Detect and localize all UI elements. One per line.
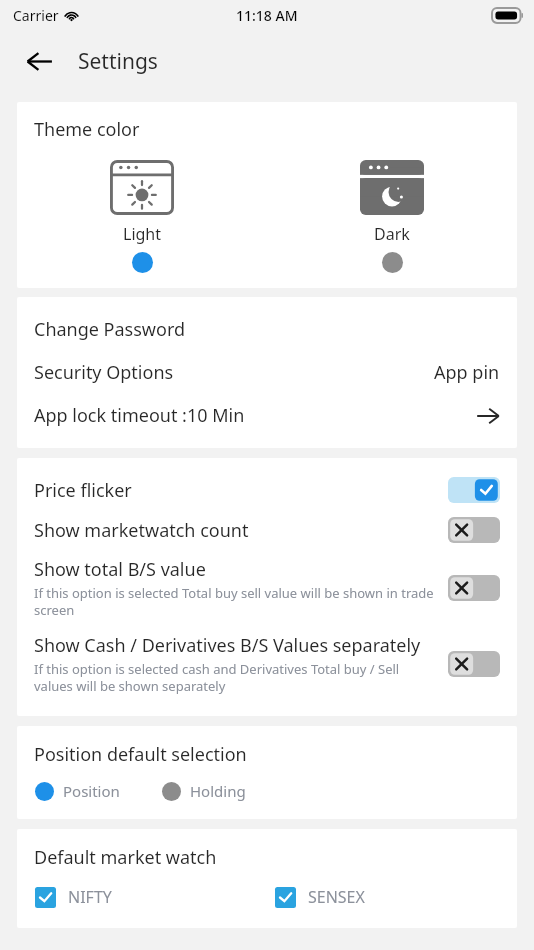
staticText: If this option is selected Total buy sel… (34, 584, 436, 619)
staticText: Show Cash / Derivatives B/S Values separ… (34, 633, 421, 658)
staticText: Dark (374, 223, 410, 245)
other: Open (476, 404, 500, 428)
staticText: Security Options (34, 360, 174, 385)
button[interactable]: Back (16, 38, 62, 84)
button[interactable]: App lock timeout :10 Min (17, 394, 517, 437)
button[interactable]: Show total B/S value (17, 550, 517, 626)
button[interactable]: Off (448, 517, 500, 543)
staticText: Show marketwatch count (34, 518, 249, 543)
button[interactable]: Holding (160, 779, 248, 803)
staticText: SENSEX (308, 886, 365, 908)
staticText: App pin (434, 360, 500, 385)
staticText: Holding (190, 781, 246, 801)
button[interactable]: SENSEX (273, 884, 367, 910)
staticText: Change Password (34, 317, 186, 342)
staticText: Carrier (13, 6, 59, 25)
staticText: Position (63, 781, 120, 801)
button[interactable]: Show marketwatch count (17, 510, 517, 550)
staticText: NIFTY (68, 886, 112, 908)
button[interactable]: NIFTY (33, 884, 114, 910)
button[interactable]: Change Password (17, 308, 517, 351)
button[interactable]: Off (448, 575, 500, 601)
staticText: Price flicker (34, 478, 132, 503)
button[interactable]: Show Cash / Derivatives B/S Values separ… (17, 626, 517, 702)
button[interactable]: Position (33, 779, 122, 803)
button[interactable]: Off (448, 651, 500, 677)
button[interactable]: Light (100, 158, 184, 275)
staticText: Theme color (34, 117, 140, 142)
staticText: Default market watch (34, 845, 217, 870)
staticText: App lock timeout :10 Min (34, 403, 245, 428)
button[interactable]: Price flicker (17, 470, 517, 510)
staticText: If this option is selected cash and Deri… (34, 660, 436, 695)
staticText: Position default selection (34, 742, 247, 767)
staticText: 11:18 AM (236, 6, 298, 25)
staticText: Show total B/S value (34, 557, 206, 582)
staticText: Light (123, 223, 162, 245)
button[interactable]: Dark (350, 158, 434, 275)
button[interactable]: On (448, 477, 500, 503)
staticText: Settings (78, 47, 158, 76)
button[interactable]: Security Options (17, 351, 517, 394)
